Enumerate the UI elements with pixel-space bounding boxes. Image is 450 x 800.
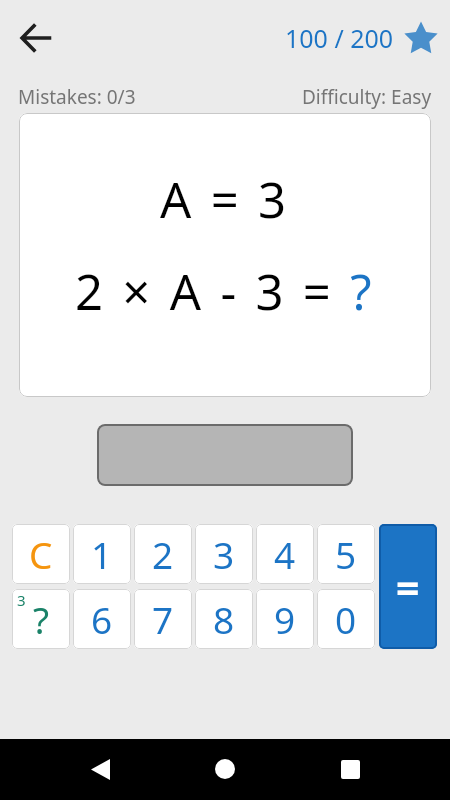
staticText: A = 3	[160, 166, 290, 233]
staticText: 9	[274, 594, 296, 644]
staticText: Mistakes: 0/3	[18, 84, 136, 110]
staticText: 100 / 200	[285, 21, 394, 55]
staticText: 2 × A - 3 = ?	[75, 258, 375, 325]
button[interactable]	[14, 15, 60, 61]
button[interactable]: =	[379, 524, 437, 649]
staticText: 3	[17, 590, 26, 610]
staticText: 0	[335, 594, 357, 644]
button[interactable]: 2	[134, 524, 192, 584]
button[interactable]	[205, 749, 245, 789]
button[interactable]	[80, 749, 120, 789]
button[interactable]: 100 / 200	[285, 21, 438, 55]
staticText: 2	[152, 529, 174, 579]
staticText: 1	[91, 529, 113, 579]
staticText: Difficulty: Easy	[302, 84, 432, 110]
staticText: ?	[33, 594, 50, 644]
button[interactable]: 0	[317, 589, 375, 649]
button[interactable]: 8	[195, 589, 253, 649]
button[interactable]: ?	[12, 589, 70, 649]
button[interactable]	[330, 749, 370, 789]
staticText: 6	[91, 594, 113, 644]
button[interactable]: 6	[73, 589, 131, 649]
staticText: 5	[335, 529, 357, 579]
button[interactable]: 7	[134, 589, 192, 649]
staticText: 4	[274, 529, 296, 579]
staticText: 7	[152, 594, 174, 644]
staticText: 3	[213, 529, 235, 579]
button[interactable]: 5	[317, 524, 375, 584]
staticText: =	[396, 559, 420, 615]
button[interactable]: 3	[195, 524, 253, 584]
button[interactable]: C	[12, 524, 70, 584]
button[interactable]: 4	[256, 524, 314, 584]
button[interactable]: 1	[73, 524, 131, 584]
staticText: 8	[213, 594, 235, 644]
staticText: C	[29, 529, 53, 579]
button[interactable]: 9	[256, 589, 314, 649]
